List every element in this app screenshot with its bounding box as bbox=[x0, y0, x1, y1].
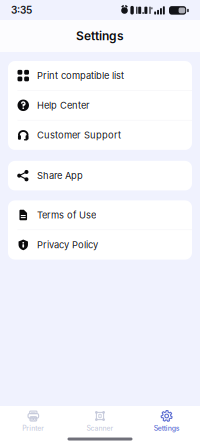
button[interactable]: Privacy Policy bbox=[8, 230, 192, 260]
button[interactable]: Print compatible list bbox=[8, 61, 192, 91]
button[interactable]: Share App bbox=[8, 161, 192, 190]
staticText: Help Center bbox=[37, 100, 90, 111]
button[interactable]: Help Center bbox=[8, 91, 192, 120]
button[interactable]: Customer Support bbox=[8, 120, 192, 150]
staticText: Settings bbox=[76, 29, 124, 43]
staticText: Terms of Use bbox=[37, 209, 96, 221]
button[interactable]: Scanner bbox=[67, 410, 133, 432]
staticText: 3:35 bbox=[11, 4, 32, 16]
staticText: Privacy Policy bbox=[37, 239, 98, 250]
staticText: Settings bbox=[154, 424, 180, 432]
staticText: Print compatible list bbox=[37, 70, 124, 81]
staticText: Customer Support bbox=[37, 129, 121, 141]
button[interactable]: Printer bbox=[0, 410, 67, 432]
staticText: Printer bbox=[22, 424, 44, 432]
staticText: Scanner bbox=[86, 424, 113, 432]
staticText: Share App bbox=[37, 170, 83, 181]
button[interactable]: Settings bbox=[133, 410, 200, 432]
button[interactable]: Terms of Use bbox=[8, 200, 192, 230]
